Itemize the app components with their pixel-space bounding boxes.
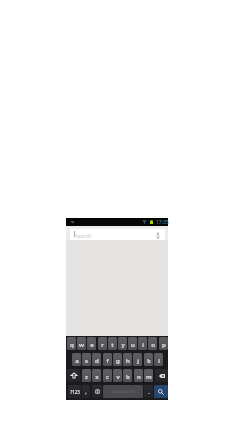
staticText: 17:35: [156, 219, 169, 226]
staticText: m: [146, 372, 152, 380]
staticText: ?123: [70, 389, 80, 395]
staticText: z: [85, 372, 88, 380]
button[interactable]: Backspace: [155, 369, 168, 382]
staticText: l: [158, 356, 160, 364]
staticText: v: [116, 372, 120, 380]
staticText: n: [137, 372, 141, 380]
button[interactable]: l: [154, 353, 163, 366]
button[interactable]: o: [148, 337, 157, 350]
button[interactable]: Search: [154, 385, 168, 398]
button[interactable]: h: [123, 353, 132, 366]
staticText: c: [106, 372, 109, 380]
button[interactable]: x: [92, 369, 101, 382]
staticText: f: [106, 356, 109, 364]
staticText: u: [131, 340, 135, 348]
button[interactable]: Voice search: [154, 231, 162, 239]
button[interactable]: d: [92, 353, 101, 366]
button[interactable]: n: [134, 369, 143, 382]
button[interactable]: Shift: [67, 369, 80, 382]
button[interactable]: ,: [82, 385, 90, 398]
button[interactable]: Search: [70, 229, 165, 240]
button[interactable]: b: [123, 369, 132, 382]
button[interactable]: j: [133, 353, 142, 366]
button[interactable]: Change language: [92, 385, 102, 398]
staticText: h: [126, 356, 130, 364]
staticText: d: [95, 356, 99, 364]
staticText: e: [90, 340, 94, 348]
staticText: k: [147, 356, 151, 364]
button[interactable]: u: [128, 337, 137, 350]
button[interactable]: t: [108, 337, 117, 350]
button[interactable]: m: [144, 369, 153, 382]
staticText: y: [121, 340, 125, 348]
button[interactable]: English (US): [103, 385, 143, 398]
staticText: x: [95, 372, 99, 380]
staticText: ,: [85, 388, 87, 395]
button[interactable]: r: [98, 337, 107, 350]
button[interactable]: e: [87, 337, 96, 350]
staticText: s: [85, 356, 88, 364]
staticText: t: [111, 340, 114, 348]
staticText: g: [116, 356, 120, 364]
staticText: i: [142, 340, 144, 348]
button[interactable]: z: [82, 369, 91, 382]
staticText: r: [101, 340, 104, 348]
button[interactable]: c: [103, 369, 112, 382]
button[interactable]: .: [144, 385, 153, 398]
staticText: .: [148, 388, 150, 395]
button[interactable]: y: [118, 337, 127, 350]
staticText: a: [75, 356, 79, 364]
button[interactable]: w: [77, 337, 86, 350]
button[interactable]: p: [159, 337, 168, 350]
staticText: w: [79, 340, 84, 348]
button[interactable]: v: [113, 369, 122, 382]
button[interactable]: q: [67, 337, 76, 350]
button[interactable]: f: [103, 353, 112, 366]
button[interactable]: g: [113, 353, 122, 366]
button[interactable]: k: [144, 353, 153, 366]
button[interactable]: s: [82, 353, 91, 366]
staticText: q: [70, 340, 74, 348]
staticText: Search: [75, 232, 92, 239]
button[interactable]: ?123: [68, 385, 81, 398]
staticText: b: [126, 372, 130, 380]
staticText: o: [151, 340, 155, 348]
staticText: English (US): [112, 389, 135, 394]
staticText: j: [137, 356, 139, 364]
staticText: p: [162, 340, 166, 348]
button[interactable]: a: [72, 353, 81, 366]
button[interactable]: i: [138, 337, 147, 350]
